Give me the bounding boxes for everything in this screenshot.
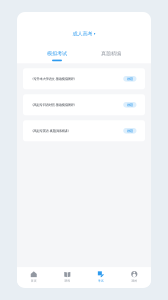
staticText: 做题 [127,77,133,81]
button[interactable]: 成人高考 [17,14,151,48]
button[interactable]: 考试 [84,267,117,286]
staticText: 《高起专英语-真题演练精讲》 [30,128,70,133]
button[interactable]: 《高起专英语-真题演练精讲》 [23,120,145,141]
staticText: 做题 [127,129,133,133]
staticText: 成人高考 [72,30,92,37]
button[interactable]: 真题精编 [101,50,121,61]
staticText: 《专升本大学语文-基础模拟测评》 [30,76,76,81]
staticText: 《高起专日语对照-基础模拟测评》 [30,102,76,107]
button[interactable]: 首页 [17,267,50,286]
staticText: 模拟考试 [47,50,67,57]
staticText: 我的 [131,279,137,283]
button[interactable]: 《高起专日语对照-基础模拟测评》 [23,94,145,115]
staticText: 做题 [127,103,133,107]
staticText: 考试 [98,279,104,283]
staticText: 真题精编 [101,50,121,57]
button[interactable]: 《专升本大学语文-基础模拟测评》 [23,68,145,89]
button[interactable]: 我的 [117,267,151,286]
button[interactable]: 课程 [50,267,84,286]
staticText: 首页 [31,279,37,283]
staticText: 课程 [64,279,70,283]
button[interactable]: 模拟考试 [47,50,67,61]
staticText: ▾ [94,32,96,36]
